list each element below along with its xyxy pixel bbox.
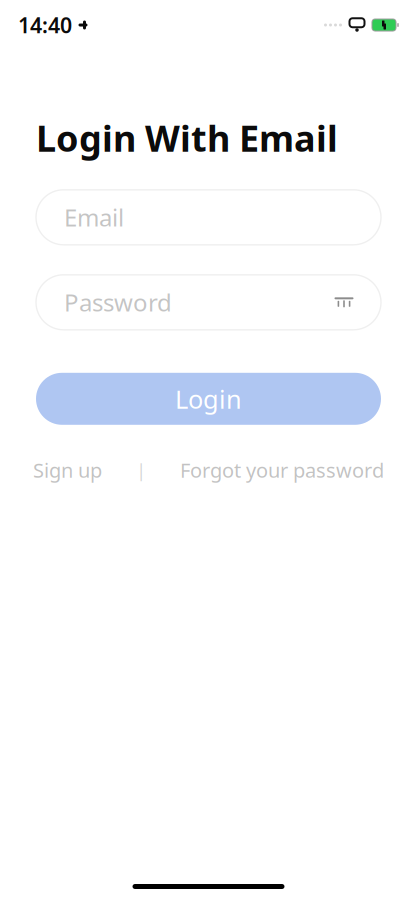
staticText: Login With Email [36, 114, 338, 162]
staticText: Sign up [33, 457, 102, 483]
staticText: 14:40 [18, 11, 72, 39]
button[interactable]: Show password [329, 290, 359, 314]
staticText: Password [64, 286, 172, 318]
button[interactable]: Forgot your password [174, 451, 390, 489]
staticText: Forgot your password [180, 457, 384, 483]
button[interactable]: Login [36, 373, 381, 425]
staticText: | [136, 458, 146, 482]
button[interactable]: Sign up [27, 451, 108, 489]
staticText: Email [64, 201, 124, 233]
staticText: Login [175, 382, 242, 416]
